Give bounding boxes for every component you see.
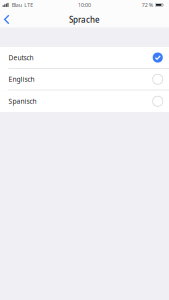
button[interactable]: Spanisch — [0, 90, 169, 112]
staticText: 72 % — [142, 1, 153, 8]
staticText: LTE — [24, 1, 33, 8]
staticText: Spanisch — [8, 97, 36, 106]
staticText: 10:00 — [78, 1, 91, 8]
staticText: Englisch — [8, 75, 34, 84]
staticText: Blau — [12, 1, 22, 8]
staticText: Sprache — [69, 14, 100, 25]
button[interactable]: Back — [0, 10, 18, 27]
staticText: Deutsch — [8, 53, 33, 62]
button[interactable]: Englisch — [0, 69, 169, 90]
button[interactable]: Deutsch — [0, 47, 169, 69]
